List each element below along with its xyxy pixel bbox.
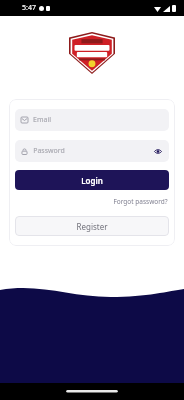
staticText: 5:47	[22, 3, 36, 13]
button[interactable]: Password	[15, 140, 169, 162]
button[interactable]: Show password	[153, 146, 163, 156]
button[interactable]: Forgot password?	[112, 196, 169, 207]
staticText: Forgot password?	[113, 197, 168, 206]
staticText: Register	[76, 221, 108, 232]
button[interactable]: Login	[15, 170, 169, 190]
button[interactable]: Email	[15, 109, 169, 131]
staticText: Email	[33, 115, 51, 125]
staticText: Login	[81, 175, 103, 186]
staticText: Password	[33, 146, 65, 156]
button[interactable]: Register	[15, 216, 169, 236]
